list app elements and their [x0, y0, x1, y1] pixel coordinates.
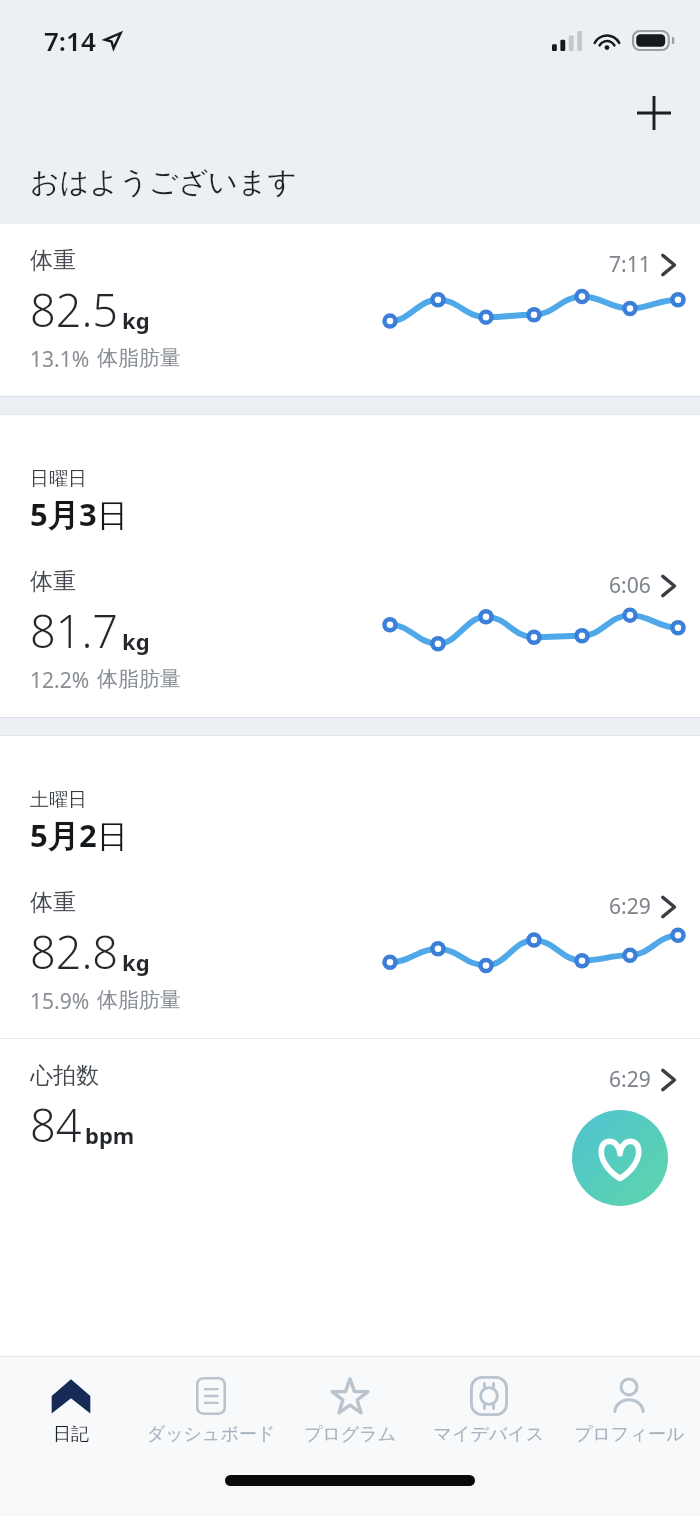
staticText: 体脂肪量: [97, 666, 181, 692]
staticText: 84: [30, 1094, 82, 1155]
staticText: 6:06: [609, 571, 651, 600]
staticText: 体重: [30, 246, 76, 275]
staticText: 82.5: [30, 279, 119, 340]
staticText: bpm: [85, 1120, 135, 1150]
staticText: 7:11: [609, 250, 651, 279]
staticText: kg: [122, 947, 150, 977]
staticText: 3: [79, 493, 97, 535]
staticText: 82.8: [30, 921, 119, 982]
button[interactable]: マイデバイス: [421, 1369, 557, 1450]
staticText: 体重: [30, 567, 76, 596]
staticText: おはようございます: [30, 164, 298, 201]
staticText: 81.7: [30, 600, 119, 661]
staticText: 日曜日: [30, 467, 87, 491]
staticText: マイデバイス: [421, 1423, 557, 1446]
staticText: 日: [97, 817, 128, 856]
staticText: 6:29: [609, 1065, 651, 1094]
staticText: プロフィール: [561, 1423, 697, 1446]
staticText: 7:14: [44, 23, 96, 58]
button[interactable]: Add: [628, 87, 680, 139]
staticText: 5月: [30, 493, 79, 535]
staticText: 15.9%: [30, 987, 90, 1016]
staticText: 体脂肪量: [97, 345, 181, 371]
staticText: kg: [122, 305, 150, 335]
staticText: 6:29: [609, 892, 651, 921]
staticText: 12.2%: [30, 666, 90, 695]
button[interactable]: Measure heart rate: [572, 1110, 668, 1206]
staticText: ダッシュボード: [143, 1423, 279, 1446]
staticText: 心拍数: [30, 1061, 99, 1090]
staticText: 日: [97, 496, 128, 535]
button[interactable]: 日記: [3, 1369, 139, 1450]
staticText: 体脂肪量: [97, 987, 181, 1013]
staticText: kg: [122, 626, 150, 656]
button[interactable]: プロフィール: [561, 1369, 697, 1450]
staticText: 土曜日: [30, 788, 87, 812]
button[interactable]: 6:29: [0, 866, 700, 1038]
staticText: 13.1%: [30, 345, 90, 374]
button[interactable]: プログラム: [282, 1369, 418, 1450]
button[interactable]: 7:11: [0, 224, 700, 396]
staticText: 2: [79, 814, 97, 856]
staticText: 日記: [3, 1423, 139, 1446]
button[interactable]: 6:06: [0, 545, 700, 717]
staticText: 5月: [30, 814, 79, 856]
button[interactable]: 6:29: [0, 1039, 700, 1162]
staticText: プログラム: [282, 1423, 418, 1446]
button[interactable]: ダッシュボード: [143, 1369, 279, 1450]
staticText: 体重: [30, 888, 76, 917]
